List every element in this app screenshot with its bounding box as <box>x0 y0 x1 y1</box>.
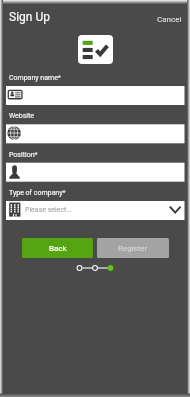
staticText: Sign Up <box>9 10 50 24</box>
staticText: Back <box>49 244 67 253</box>
button[interactable]: Register <box>97 238 169 258</box>
staticText: Please select... <box>25 206 72 214</box>
button[interactable]: Website <box>6 124 185 143</box>
staticText: Position* <box>9 151 38 159</box>
button[interactable]: Position <box>6 163 185 182</box>
button[interactable]: Company name <box>6 86 185 105</box>
staticText: Cancel <box>157 15 182 24</box>
button[interactable]: Cancel <box>150 11 190 28</box>
button[interactable]: Type of company <box>6 201 185 220</box>
staticText: Register <box>118 244 148 253</box>
staticText: Website <box>9 112 35 120</box>
staticText: Company name* <box>9 74 61 82</box>
staticText: Type of company* <box>9 189 66 197</box>
button[interactable]: Back <box>22 238 93 258</box>
